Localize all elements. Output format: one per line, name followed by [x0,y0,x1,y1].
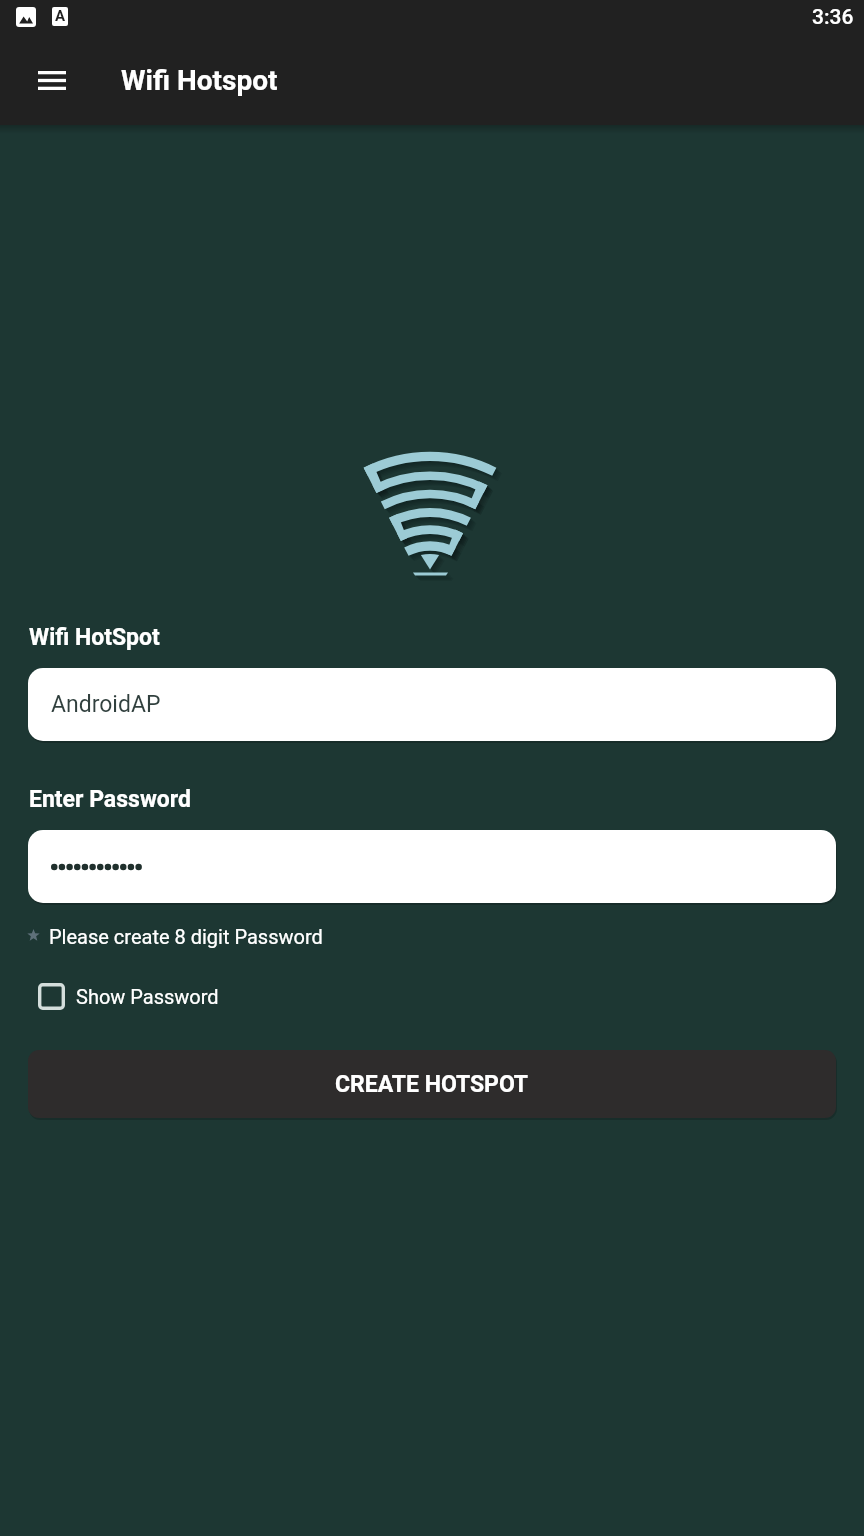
staticText: CREATE HOTSPOT [335,1071,529,1098]
staticText: AndroidAP [51,691,161,718]
button[interactable] [28,830,836,903]
button[interactable]: AndroidAP [28,668,836,741]
staticText: Enter Password [29,786,191,813]
button[interactable]: CREATE HOTSPOT [28,1050,836,1118]
button[interactable]: Show Password [24,975,219,1017]
staticText: Show Password [76,985,219,1008]
staticText: Please create 8 digit Password [49,925,323,948]
staticText: Wifi HotSpot [29,624,160,651]
button[interactable]: Open navigation drawer [14,42,90,118]
staticText: Wifi Hotspot [121,64,278,97]
staticText: A [55,7,66,25]
staticText: 3:36 [812,5,854,30]
